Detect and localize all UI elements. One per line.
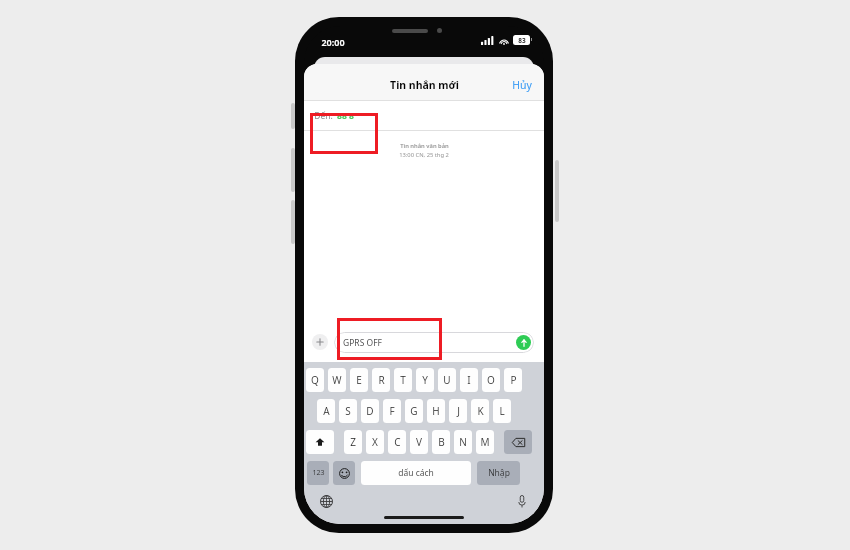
button[interactable]: X — [366, 430, 384, 454]
staticText: L — [499, 404, 505, 418]
button[interactable]: U — [438, 368, 456, 392]
staticText: G — [410, 404, 418, 418]
staticText: Z — [350, 435, 356, 449]
button[interactable]: Y — [416, 368, 434, 392]
staticText: 88 8 — [337, 110, 354, 122]
staticText: V — [416, 435, 422, 449]
staticText: Q — [311, 373, 319, 387]
staticText: Tin nhắn mới — [390, 78, 459, 92]
button[interactable]: E — [350, 368, 368, 392]
staticText: H — [432, 404, 440, 418]
staticText: Đến: — [314, 110, 333, 122]
button[interactable]: Backspace — [504, 430, 532, 454]
staticText: M — [480, 435, 490, 449]
button[interactable]: S — [339, 399, 357, 423]
button[interactable]: L — [493, 399, 511, 423]
staticText: Y — [422, 373, 428, 387]
staticText: P — [510, 373, 517, 387]
staticText: A — [323, 404, 330, 418]
button[interactable]: Z — [344, 430, 362, 454]
staticText: D — [366, 404, 374, 418]
button[interactable]: Q — [306, 368, 324, 392]
button[interactable]: R — [372, 368, 390, 392]
button[interactable]: Emoji — [333, 461, 355, 485]
button[interactable]: W — [328, 368, 346, 392]
button[interactable]: C — [388, 430, 406, 454]
staticText: N — [459, 435, 467, 449]
staticText: Tin nhắn văn bản — [400, 142, 449, 150]
staticText: F — [389, 404, 395, 418]
staticText: K — [477, 404, 484, 418]
staticText: dấu cách — [398, 467, 434, 479]
staticText: C — [394, 435, 401, 449]
button[interactable]: Nhập — [477, 461, 520, 485]
button[interactable]: H — [427, 399, 445, 423]
button[interactable]: K — [471, 399, 489, 423]
button[interactable]: D — [361, 399, 379, 423]
button[interactable]: Change keyboard language — [316, 491, 336, 511]
staticText: O — [487, 373, 495, 387]
button[interactable]: M — [476, 430, 494, 454]
button[interactable]: Send — [516, 335, 531, 350]
button[interactable]: 123 — [307, 461, 329, 485]
button[interactable]: B — [432, 430, 450, 454]
staticText: X — [372, 435, 378, 449]
button[interactable]: G — [405, 399, 423, 423]
button[interactable]: Shift — [306, 430, 334, 454]
staticText: J — [457, 404, 460, 418]
button[interactable]: Dictation — [512, 491, 532, 511]
staticText: W — [332, 373, 342, 387]
staticText: 13:00 CN, 25 thg 2 — [399, 151, 449, 159]
button[interactable]: GPRS OFF — [334, 332, 534, 353]
staticText: U — [443, 373, 451, 387]
button[interactable]: I — [460, 368, 478, 392]
button[interactable]: A — [317, 399, 335, 423]
staticText: E — [356, 373, 362, 387]
staticText: S — [345, 404, 351, 418]
staticText: Hủy — [512, 78, 532, 92]
staticText: I — [467, 373, 471, 387]
staticText: 123 — [312, 468, 325, 478]
button[interactable]: Add attachment — [312, 334, 328, 350]
button[interactable]: N — [454, 430, 472, 454]
staticText: 83 — [518, 36, 526, 45]
button[interactable]: O — [482, 368, 500, 392]
button[interactable]: F — [383, 399, 401, 423]
staticText: GPRS OFF — [343, 337, 382, 349]
button[interactable]: J — [449, 399, 467, 423]
button[interactable]: P — [504, 368, 522, 392]
button[interactable]: dấu cách — [361, 461, 471, 485]
button[interactable]: T — [394, 368, 412, 392]
staticText: 20:00 — [321, 36, 345, 48]
staticText: B — [438, 435, 445, 449]
staticText: T — [400, 373, 406, 387]
staticText: Nhập — [488, 467, 510, 479]
button[interactable]: V — [410, 430, 428, 454]
staticText: R — [378, 373, 385, 387]
button[interactable]: Đến: — [304, 101, 544, 131]
button[interactable]: Hủy — [500, 73, 544, 97]
